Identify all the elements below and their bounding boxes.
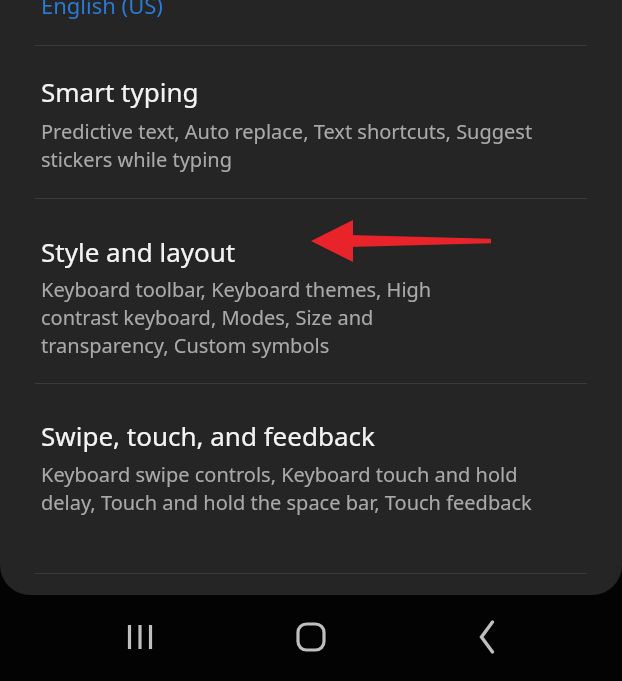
button[interactable]: Home [279, 605, 343, 669]
button[interactable]: Recent apps [108, 605, 172, 669]
button[interactable]: English (US) [41, 0, 163, 20]
button[interactable]: Back [455, 605, 519, 669]
staticText: Keyboard swipe controls, Keyboard touch … [41, 461, 551, 516]
staticText: Smart typing [41, 74, 199, 109]
button[interactable] [0, 199, 622, 383]
staticText: Swipe, touch, and feedback [41, 418, 375, 453]
staticText: Predictive text, Auto replace, Text shor… [41, 118, 541, 173]
button[interactable] [0, 46, 622, 198]
staticText: Keyboard toolbar, Keyboard themes, High … [41, 276, 501, 359]
button[interactable] [0, 384, 622, 573]
staticText: Style and layout [41, 234, 236, 269]
